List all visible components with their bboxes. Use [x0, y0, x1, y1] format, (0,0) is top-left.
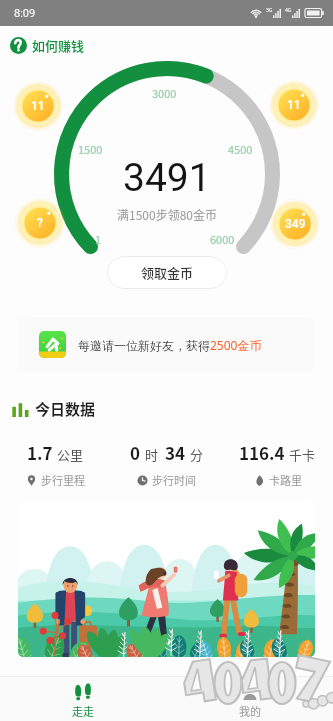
button[interactable]: 每邀请一位新好友，获得2500金币 [19, 317, 314, 372]
staticText: 3000 [152, 85, 177, 101]
staticText: 6000 [210, 231, 235, 247]
staticText: 0 [130, 440, 141, 465]
staticText: 1.7 [27, 440, 53, 465]
staticText: 如何赚钱 [32, 36, 85, 55]
staticText: 我的 [239, 703, 261, 719]
staticText: 步行时间 [152, 472, 196, 488]
staticText: ? [37, 216, 43, 230]
staticText: 领取金币 [141, 263, 194, 282]
staticText: 步行里程 [41, 472, 85, 488]
staticText: 3G [266, 7, 273, 14]
staticText: 1500 [78, 141, 103, 157]
staticText: 11 [287, 98, 301, 112]
staticText: 116.4 [239, 440, 285, 465]
staticText: 4G [285, 7, 292, 14]
button[interactable]: Coin reward 11 [13, 81, 63, 131]
staticText: 公里 [57, 445, 84, 464]
staticText: 千卡 [289, 445, 316, 464]
staticText: 349 [285, 217, 306, 231]
button[interactable]: Coin reward 349 [270, 199, 320, 249]
staticText: 时 [145, 445, 159, 464]
button[interactable]: Coin reward 11 [269, 80, 319, 130]
staticText: 4500 [228, 141, 253, 157]
staticText: 34 [165, 440, 186, 465]
button[interactable]: 如何赚钱 [10, 36, 85, 55]
staticText: 3491 [123, 155, 211, 201]
staticText: 卡路里 [269, 472, 302, 488]
staticText: 今日数据 [35, 398, 96, 420]
staticText: 满1500步领80金币 [117, 206, 217, 223]
staticText: 1 [95, 231, 102, 247]
button[interactable]: 走走 [0, 677, 166, 719]
button[interactable]: 我的 [166, 677, 333, 719]
button[interactable]: 领取金币 [107, 256, 227, 289]
staticText: 8:09 [14, 7, 36, 20]
staticText: 11 [31, 99, 45, 113]
button[interactable]: Coin reward ? [15, 198, 65, 248]
staticText: 走走 [72, 703, 94, 719]
staticText: 分 [190, 445, 204, 464]
staticText: 每邀请一位新好友，获得2500金币 [78, 337, 262, 353]
